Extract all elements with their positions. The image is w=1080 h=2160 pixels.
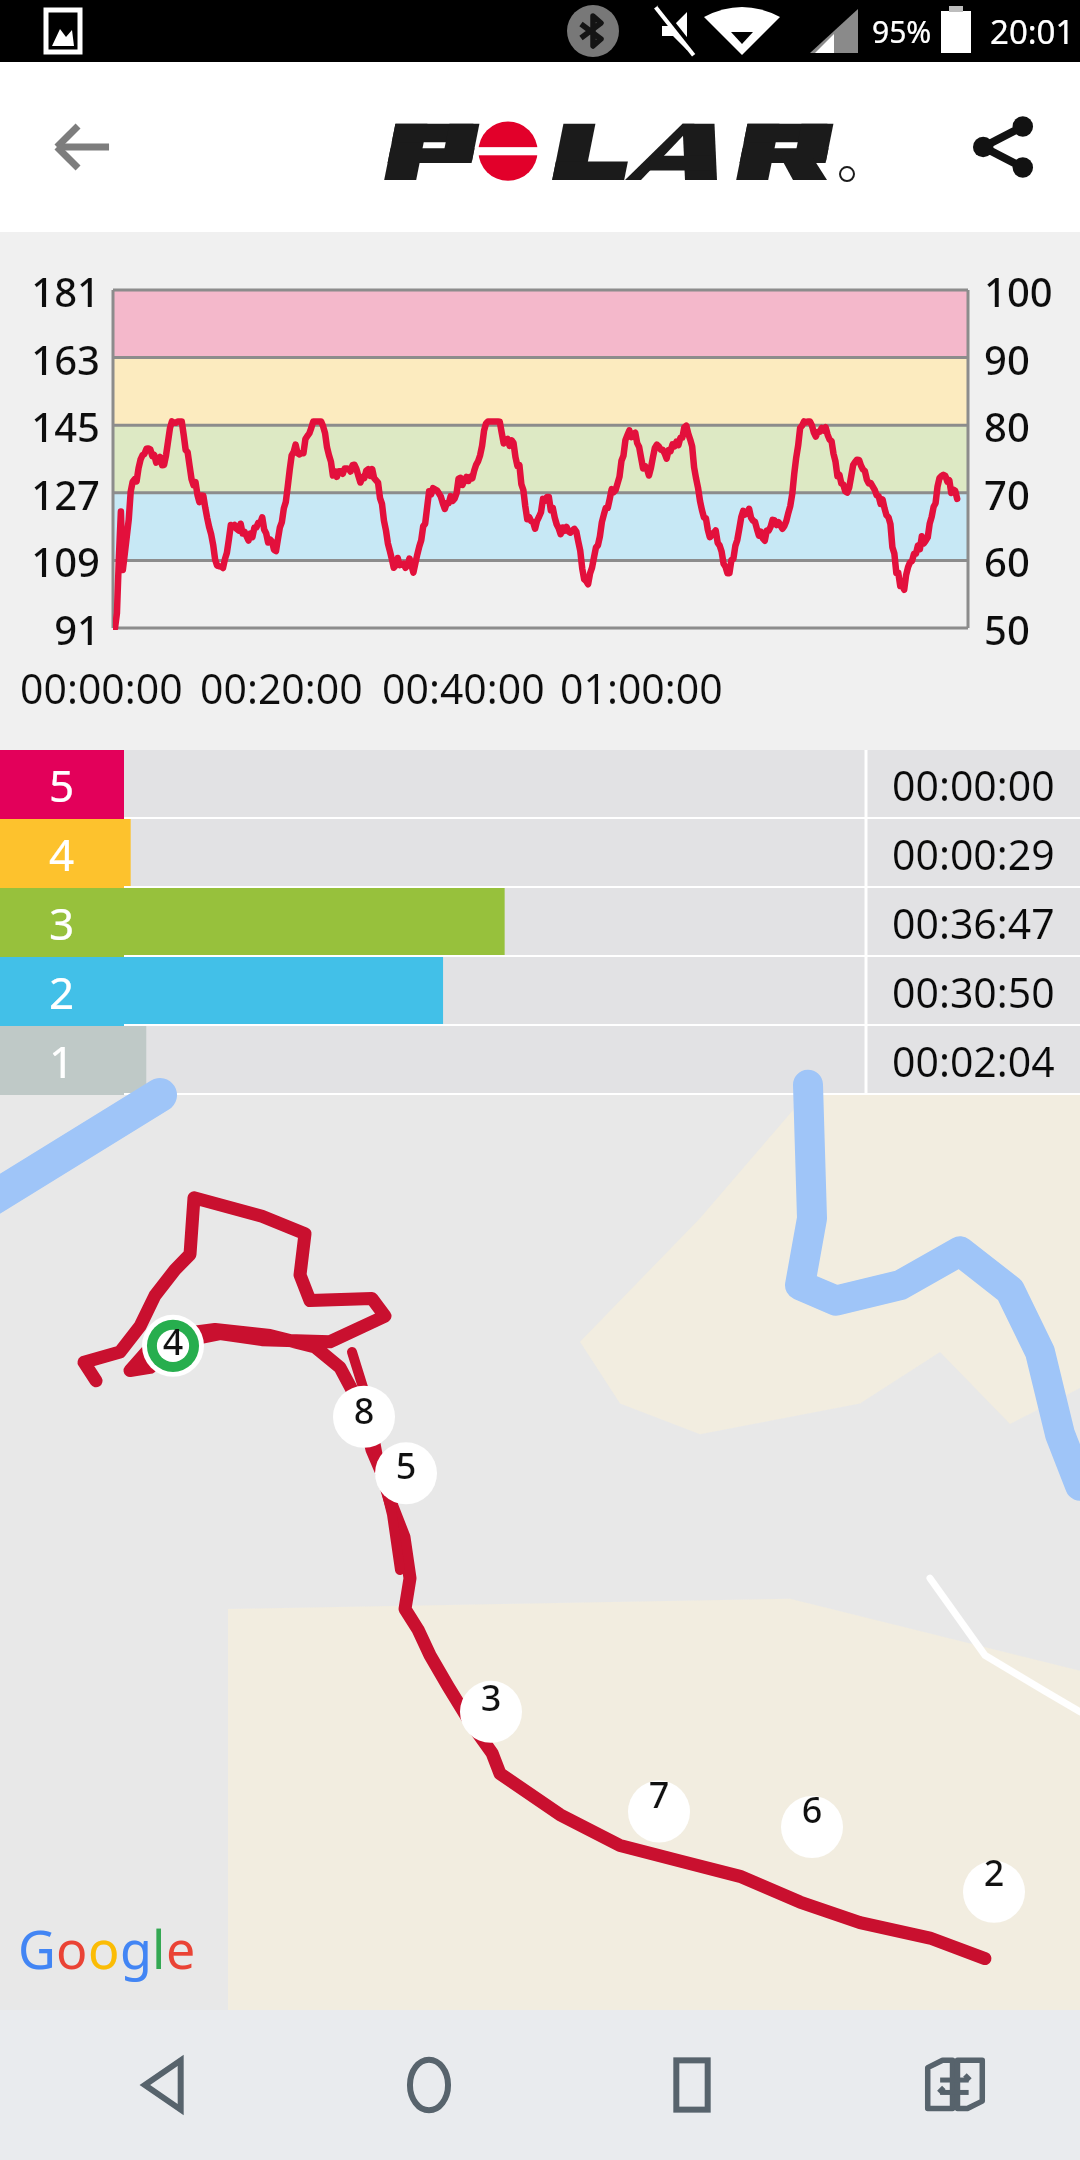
staticText: 00:36:47 — [892, 895, 1055, 951]
staticText: l — [152, 1913, 166, 1984]
staticText: 00:02:04 — [892, 1033, 1055, 1089]
staticText: 00:00:00 — [20, 660, 183, 716]
staticText: 00:40:00 — [382, 660, 545, 716]
staticText: 163 — [0, 332, 100, 386]
staticText: e — [166, 1913, 196, 1984]
button[interactable]: Switch app — [890, 2020, 1020, 2150]
button[interactable]: 3 — [0, 888, 1080, 957]
button[interactable]: 5 — [0, 750, 1080, 819]
button[interactable]: Share — [948, 92, 1058, 202]
button[interactable]: 2 — [0, 957, 1080, 1026]
button[interactable]: Home — [364, 2020, 494, 2150]
staticText: 3 — [471, 1673, 511, 1722]
staticText: 4 — [49, 824, 75, 884]
staticText: 60 — [984, 534, 1080, 588]
staticText: 00:00:00 — [892, 757, 1055, 813]
staticText: 8 — [344, 1386, 384, 1435]
staticText: o — [88, 1913, 120, 1984]
staticText: 145 — [0, 399, 100, 453]
staticText: 2 — [974, 1848, 1014, 1897]
staticText: 5 — [49, 755, 75, 815]
button[interactable]: 1 — [0, 1026, 1080, 1095]
staticText: 91 — [0, 602, 100, 656]
staticText: 3 — [49, 893, 75, 953]
button[interactable]: Recent apps — [627, 2020, 757, 2150]
button[interactable]: 4 — [0, 1095, 1080, 2010]
staticText: 00:20:00 — [200, 660, 363, 716]
staticText: 4 — [153, 1317, 193, 1366]
button[interactable]: 4 — [0, 819, 1080, 888]
staticText: 95% — [872, 11, 932, 52]
staticText: 70 — [984, 467, 1080, 521]
staticText: 2 — [49, 962, 75, 1022]
staticText: 20:01 — [990, 9, 1075, 54]
staticText: 80 — [984, 399, 1080, 453]
staticText: 00:30:50 — [892, 964, 1055, 1020]
staticText: 5 — [386, 1441, 426, 1490]
staticText: 100 — [984, 264, 1080, 318]
staticText: 7 — [639, 1770, 679, 1819]
staticText: o — [56, 1913, 88, 1984]
staticText: 1 — [49, 1031, 75, 1091]
staticText: 50 — [984, 602, 1080, 656]
staticText: 6 — [792, 1785, 832, 1834]
button[interactable]: Back — [28, 92, 138, 202]
staticText: 109 — [0, 534, 100, 588]
staticText: 90 — [984, 332, 1080, 386]
staticText: g — [120, 1913, 152, 1984]
staticText: 00:00:29 — [892, 826, 1055, 882]
staticText: 127 — [0, 467, 100, 521]
staticText: G — [18, 1913, 56, 1984]
button[interactable]: Back — [100, 2020, 230, 2150]
staticText: 01:00:00 — [560, 660, 723, 716]
staticText: 181 — [0, 264, 100, 318]
